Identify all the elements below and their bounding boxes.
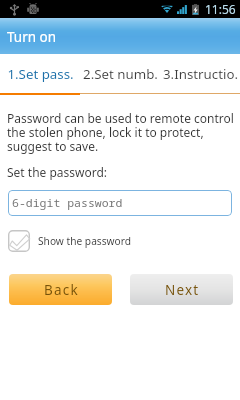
button[interactable]: 6-digit password — [8, 190, 232, 216]
button[interactable]: 2.Set numb. — [80, 54, 160, 93]
staticText: 6-digit password — [12, 195, 123, 211]
staticText: Back — [44, 281, 79, 299]
button[interactable]: Turn on — [0, 18, 240, 54]
staticText: 3.Instructio. — [163, 65, 238, 83]
staticText: 1.Set pass. — [7, 65, 74, 83]
staticText: 11:56 — [205, 1, 236, 17]
staticText: Turn on — [7, 28, 57, 46]
button[interactable]: 3.Instructio. — [160, 54, 240, 93]
staticText: Password can be used to remote control t… — [7, 110, 236, 155]
button[interactable]: Next — [130, 274, 233, 305]
button[interactable]: Back — [9, 274, 112, 305]
button[interactable]: 1.Set pass. — [0, 54, 80, 93]
staticText: 2.Set numb. — [83, 65, 158, 83]
staticText: Show the password — [38, 234, 132, 248]
button[interactable]: Show the password — [8, 230, 132, 252]
staticText: Set the password: — [7, 164, 108, 180]
staticText: Next — [165, 281, 200, 299]
